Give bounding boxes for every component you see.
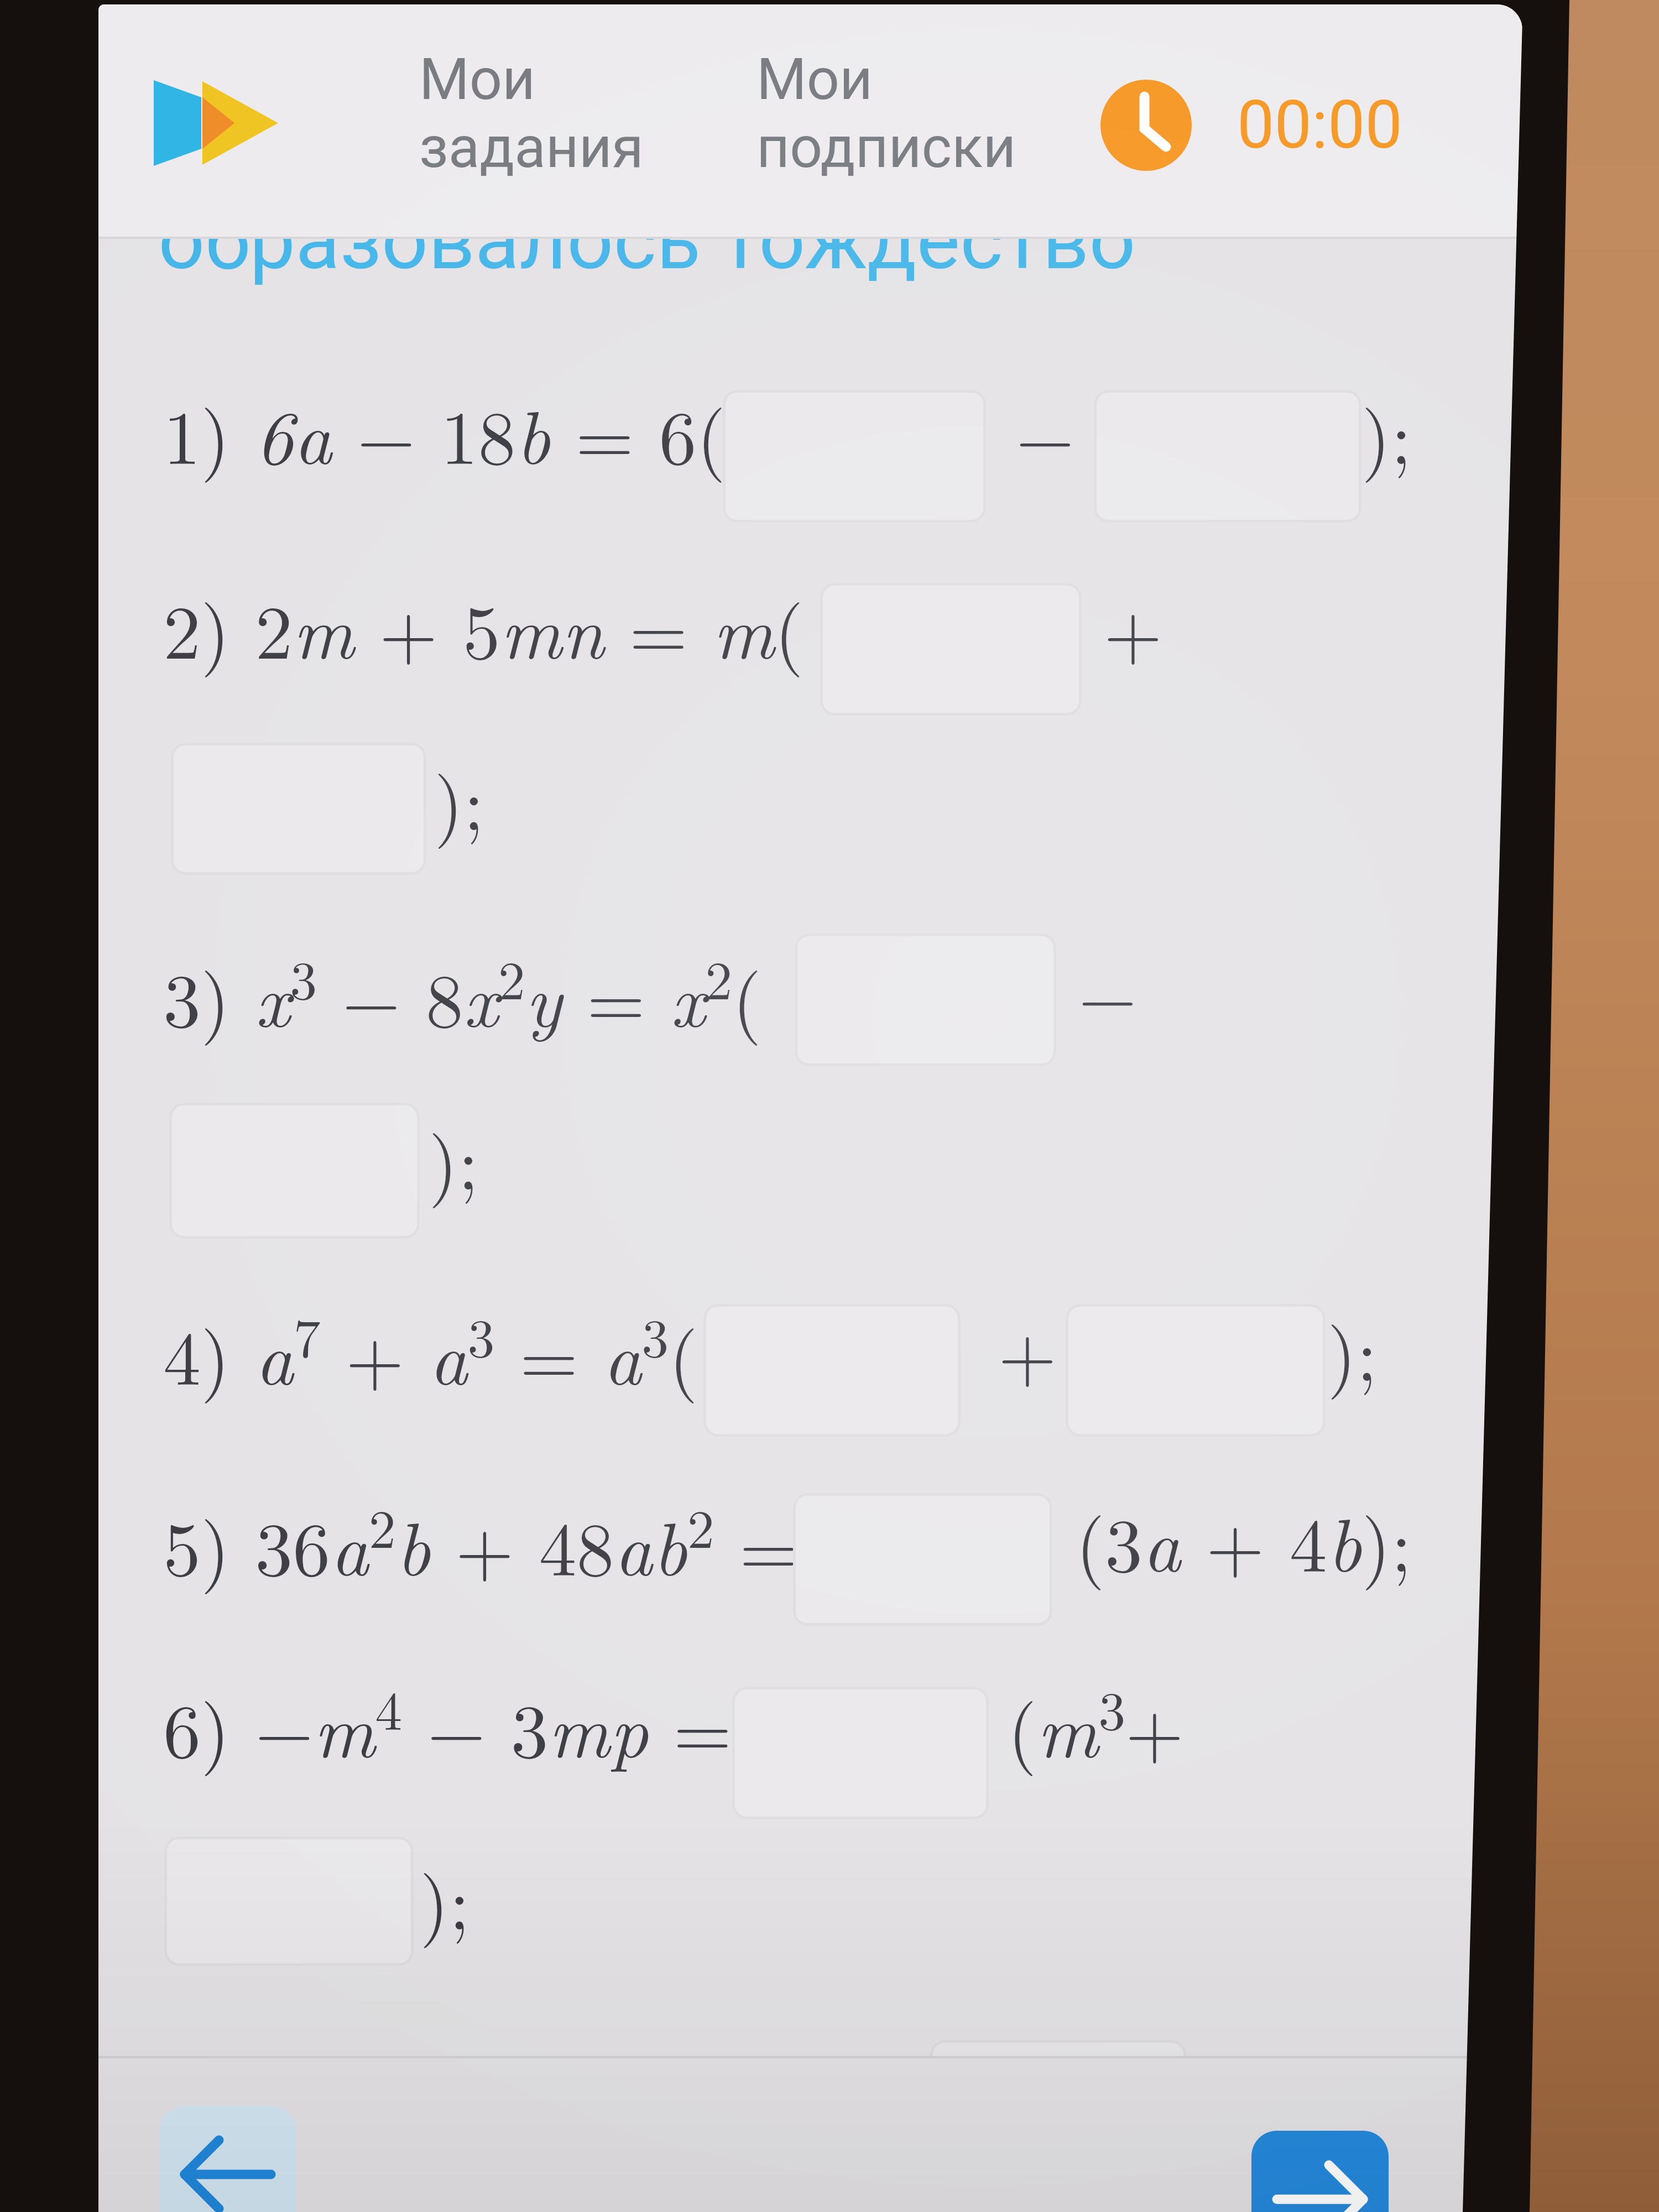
button[interactable]: App logo	[154, 80, 278, 166]
staticText: 00:00	[1237, 86, 1402, 164]
button[interactable]: Answer field	[164, 1837, 414, 1966]
staticText: 1) 6a − 18b = 6(	[163, 379, 726, 486]
staticText: образовалось тождество	[158, 192, 1136, 288]
staticText: (m3+	[1008, 1669, 1184, 1779]
button[interactable]: 00:00	[1100, 80, 1402, 171]
staticText: 2) 2m + 5mn = m(	[163, 574, 804, 681]
staticText: 5) 36a2b + 48ab2 =	[163, 1487, 798, 1597]
button[interactable]: Мои подписки	[757, 46, 1066, 192]
button[interactable]: Мои задания	[419, 46, 679, 192]
staticText: );	[420, 1845, 470, 1952]
staticText: 3) x3 − 8x2y = x2(	[163, 938, 762, 1048]
staticText: 4) a7 + a3 = a3(	[163, 1296, 698, 1406]
staticText: −	[1078, 938, 1137, 1045]
staticText: Мои подписки	[757, 46, 1016, 181]
staticText: (3a + 4b);	[1076, 1487, 1412, 1594]
staticText: );	[1327, 1296, 1378, 1403]
staticText: +	[998, 1296, 1057, 1403]
staticText: Мои задания	[419, 46, 644, 181]
button[interactable]: Back	[159, 2106, 296, 2212]
button[interactable]: Answer field	[793, 1493, 1052, 1626]
button[interactable]: Answer field	[930, 2040, 1186, 2173]
staticText: );	[1361, 379, 1412, 486]
staticText: −	[1016, 379, 1074, 486]
staticText: 6) −m4 − 3mp =	[163, 1669, 732, 1779]
staticText: +	[1104, 574, 1162, 681]
staticText: );	[434, 745, 484, 852]
staticText: );	[429, 1105, 479, 1212]
button[interactable]: Next	[1251, 2131, 1389, 2212]
